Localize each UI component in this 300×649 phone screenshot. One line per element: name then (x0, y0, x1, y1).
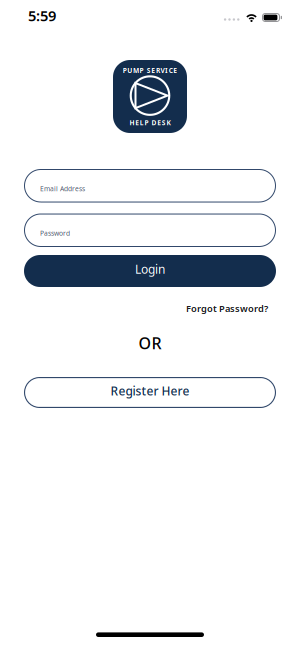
staticText: Login (135, 261, 165, 277)
staticText: OR (138, 332, 161, 354)
staticText: Register Here (110, 383, 189, 399)
staticText: HELP DESK (130, 118, 170, 127)
staticText: Forgot Password? (186, 302, 268, 315)
staticText: 5:59 (28, 6, 56, 25)
staticText: Password (40, 229, 70, 238)
staticText: PUMP SERVICE (123, 66, 177, 75)
staticText: Email Address (40, 184, 85, 193)
